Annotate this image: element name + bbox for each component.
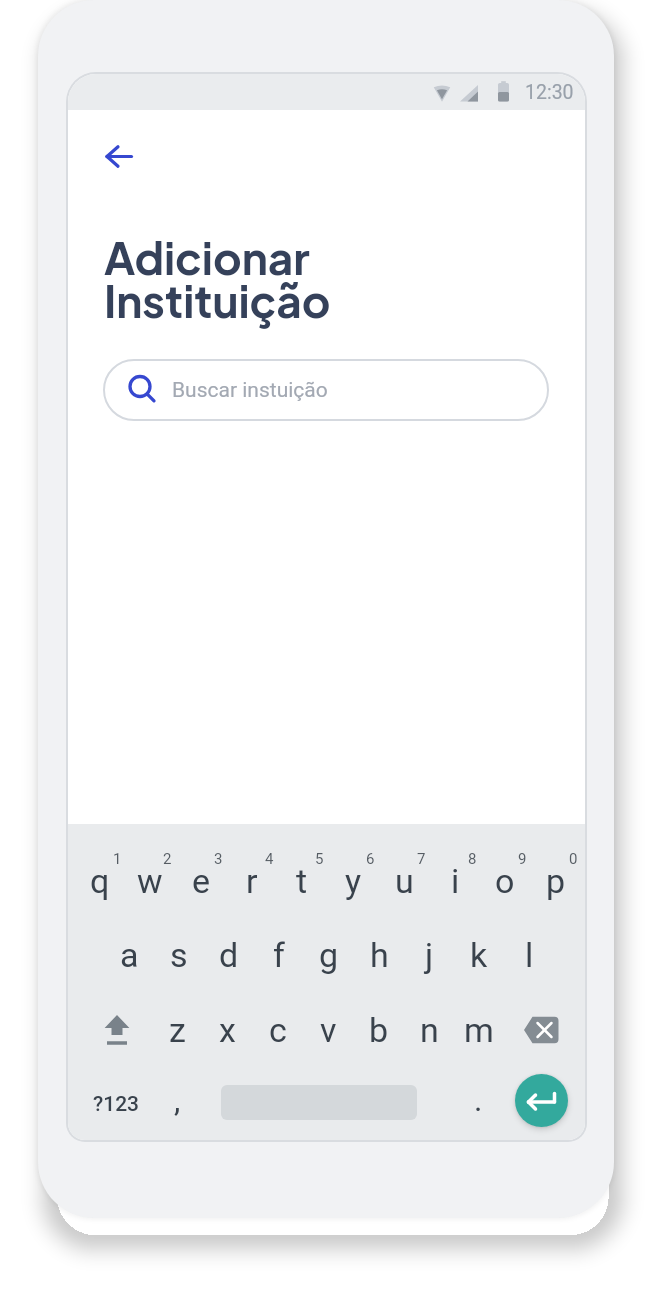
staticText: 8 xyxy=(468,850,477,868)
button[interactable]: , xyxy=(151,1072,203,1128)
staticText: k xyxy=(470,935,488,975)
button[interactable]: . xyxy=(452,1072,504,1128)
button[interactable]: d xyxy=(203,927,255,983)
button[interactable]: Buscar instuição xyxy=(103,359,549,421)
staticText: 1 xyxy=(113,850,122,868)
button[interactable]: x xyxy=(201,1002,253,1058)
staticText: j xyxy=(425,935,434,975)
button[interactable]: i xyxy=(429,853,481,909)
staticText: 5 xyxy=(315,850,324,868)
button[interactable]: v xyxy=(302,1002,354,1058)
staticText: z xyxy=(169,1010,186,1050)
button[interactable]: h xyxy=(353,927,405,983)
staticText: 9 xyxy=(518,850,527,868)
button[interactable]: z xyxy=(151,1002,203,1058)
staticText: 12:30 xyxy=(525,81,574,104)
staticText: q xyxy=(90,861,110,901)
button[interactable]: m xyxy=(453,1002,505,1058)
staticText: ?123 xyxy=(93,1092,140,1117)
button[interactable]: y xyxy=(327,853,379,909)
button[interactable]: j xyxy=(403,927,455,983)
staticText: r xyxy=(246,861,258,901)
staticText: h xyxy=(370,935,389,975)
staticText: v xyxy=(320,1010,337,1050)
button[interactable]: w xyxy=(124,853,176,909)
button[interactable]: u xyxy=(378,853,430,909)
staticText: x xyxy=(219,1010,236,1050)
staticText: m xyxy=(464,1010,494,1050)
staticText: f xyxy=(273,935,285,975)
button[interactable] xyxy=(515,1006,565,1054)
staticText: l xyxy=(525,935,534,975)
staticText: e xyxy=(192,861,211,901)
staticText: . xyxy=(474,1081,483,1119)
button[interactable]: c xyxy=(252,1002,304,1058)
staticText: 3 xyxy=(214,850,223,868)
button[interactable]: ?123 xyxy=(90,1076,142,1132)
button[interactable] xyxy=(92,133,142,179)
staticText: 7 xyxy=(417,850,426,868)
staticText: y xyxy=(345,861,362,901)
staticText: i xyxy=(451,861,460,901)
button[interactable]: o xyxy=(479,853,531,909)
button[interactable]: q xyxy=(74,853,126,909)
staticText: c xyxy=(269,1010,287,1050)
staticText: Buscar instuição xyxy=(172,378,328,403)
staticText: 2 xyxy=(163,850,172,868)
staticText: 6 xyxy=(366,850,375,868)
staticText: 0 xyxy=(569,850,578,868)
staticText: 4 xyxy=(265,850,274,868)
staticText: u xyxy=(395,861,414,901)
button[interactable] xyxy=(92,1006,142,1054)
staticText: Adicionar Instituição xyxy=(104,229,331,328)
staticText: a xyxy=(120,935,139,975)
staticText: t xyxy=(296,861,308,901)
button[interactable]: n xyxy=(403,1002,455,1058)
button[interactable]: b xyxy=(353,1002,405,1058)
button[interactable]: f xyxy=(253,927,305,983)
staticText: , xyxy=(174,1081,181,1119)
staticText: g xyxy=(319,935,339,975)
button[interactable]: g xyxy=(303,927,355,983)
staticText: s xyxy=(170,935,188,975)
staticText: b xyxy=(369,1010,389,1050)
staticText: d xyxy=(219,935,239,975)
button[interactable]: p xyxy=(530,853,582,909)
button[interactable]: k xyxy=(453,927,505,983)
staticText: o xyxy=(495,861,515,901)
button[interactable]: r xyxy=(226,853,278,909)
button[interactable] xyxy=(515,1074,568,1127)
staticText: n xyxy=(420,1010,439,1050)
button[interactable]: s xyxy=(153,927,205,983)
staticText: p xyxy=(546,861,566,901)
button[interactable]: t xyxy=(276,853,328,909)
button[interactable]: l xyxy=(503,927,555,983)
button[interactable]: a xyxy=(103,927,155,983)
button[interactable]: e xyxy=(175,853,227,909)
staticText: w xyxy=(137,861,163,901)
